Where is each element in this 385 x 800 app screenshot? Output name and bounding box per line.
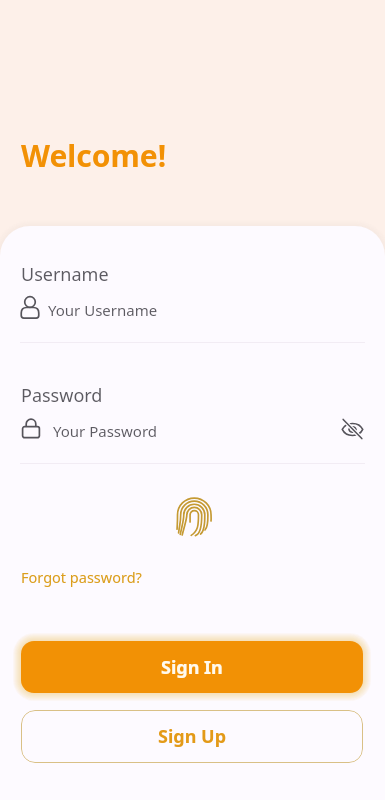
staticText: Username [21,262,109,287]
staticText: Your Password [53,421,158,441]
staticText: Welcome! [21,135,167,176]
button[interactable]: Sign Up [21,710,363,763]
staticText: Sign Up [158,724,227,749]
staticText: Sign In [161,655,223,680]
button[interactable]: Fingerprint login [175,495,215,535]
staticText: Your Username [48,300,158,320]
button[interactable]: Forgot password? [21,567,142,587]
button[interactable]: Show password [334,411,370,447]
staticText: Password [21,383,103,408]
button[interactable]: Sign In [21,641,363,693]
